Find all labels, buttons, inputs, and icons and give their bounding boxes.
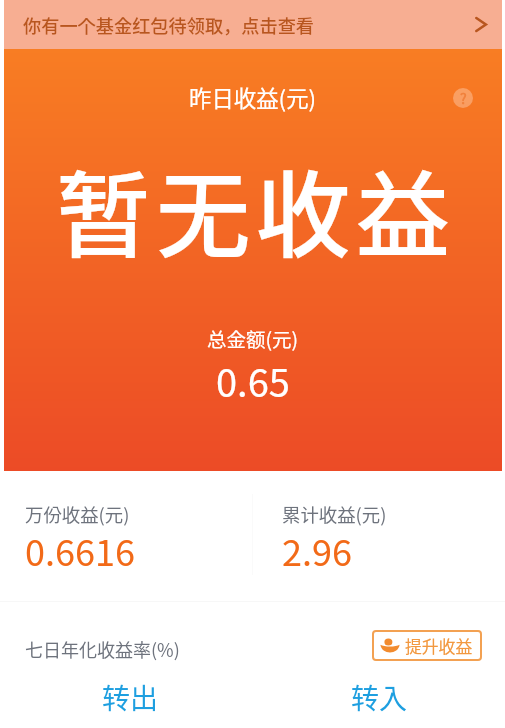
button[interactable]: Help (453, 88, 473, 108)
staticText: 暂无收益 (56, 141, 456, 278)
staticText: 万份收益(元) (25, 501, 130, 528)
other: Open (471, 15, 490, 34)
staticText: ? (460, 88, 467, 108)
staticText: 提升收益 (405, 634, 473, 658)
staticText: 昨日收益(元) (189, 81, 317, 113)
staticText: 2.96 (282, 524, 352, 576)
staticText: 七日年化收益率(%) (25, 636, 180, 662)
staticText: 累计收益(元) (282, 501, 387, 528)
staticText: 转入 (351, 677, 408, 718)
button[interactable]: 转出 (0, 670, 252, 728)
staticText: 0.6616 (25, 524, 135, 576)
button[interactable]: 你有一个基金红包待领取，点击查看 (0, 0, 505, 49)
staticText: 你有一个基金红包待领取，点击查看 (23, 12, 315, 38)
staticText: 0.65 (216, 353, 290, 408)
staticText: 总金额(元) (207, 324, 299, 352)
button[interactable]: 提升收益 (372, 630, 482, 661)
button[interactable]: 转入 (252, 670, 505, 728)
staticText: 转出 (102, 677, 159, 718)
